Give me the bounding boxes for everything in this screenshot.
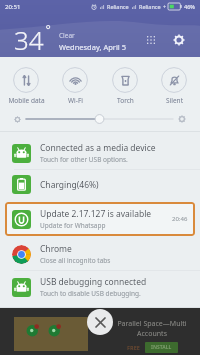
staticText: + [163,3,167,10]
button[interactable]: Mobile data [3,65,49,107]
button[interactable]: Settings [168,29,190,51]
staticText: Torch [117,96,134,105]
staticText: USB debugging connected [40,276,147,288]
staticText: 34 [14,22,44,57]
staticText: Close all incognito tabs [40,256,111,265]
button[interactable]: Close ad [87,309,113,335]
staticText: Wednesday, April 5 [59,42,127,52]
button[interactable]: Chrome [0,238,200,270]
button[interactable]: Charging(46%) [0,170,200,199]
button[interactable]: Brightness [14,113,186,125]
staticText: Reliance [107,3,129,10]
staticText: Parallel Space—Multi Accounts [112,319,192,339]
staticText: Touch to disable USB debugging. [40,289,141,298]
staticText: 20:51 [5,3,21,11]
button[interactable]: Update 2.17.127 is available [5,202,195,236]
staticText: Update 2.17.127 is available [40,208,152,220]
button[interactable]: Wi-Fi [52,65,98,107]
staticText: Update for Whatsapp [40,221,106,230]
button[interactable]: USB debugging connected [0,271,200,303]
button[interactable]: Quick settings grid [140,29,162,51]
staticText: Touch for other USB options. [40,155,128,164]
button[interactable]: Torch [102,65,148,107]
button[interactable]: Silent [151,65,197,107]
staticText: Mobile data [8,96,45,105]
staticText: Charging(46%) [40,179,99,191]
staticText: Clear [59,31,75,40]
staticText: Wi-Fi [68,96,83,105]
staticText: 46% [184,3,195,10]
staticText: 20:46 [172,215,188,223]
staticText: Reliance [139,3,161,10]
staticText: INSTALL [151,344,172,351]
staticText: Connected as a media device [40,142,156,154]
staticText: Chrome [40,243,72,255]
button[interactable]: Connected as a media device [0,137,200,169]
button[interactable]: INSTALL [145,342,178,353]
staticText: FREE [127,344,140,351]
staticText: Silent [166,96,183,105]
